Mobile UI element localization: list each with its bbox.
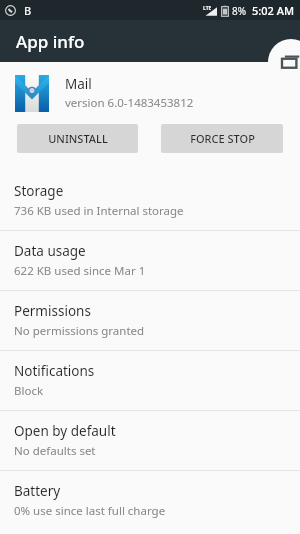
button[interactable]: Recent apps — [268, 39, 300, 85]
staticText: Notifications — [14, 362, 95, 380]
staticText: 8% — [232, 4, 247, 18]
staticText: B — [24, 3, 32, 18]
button[interactable]: FORCE STOP — [161, 124, 283, 153]
staticText: No permissions granted — [14, 323, 145, 339]
button[interactable]: Permissions — [0, 291, 300, 350]
staticText: Data usage — [14, 242, 86, 260]
button[interactable]: Notifications — [0, 351, 300, 410]
button[interactable]: Data usage — [0, 231, 300, 290]
staticText: Storage — [14, 182, 64, 200]
staticText: 0% use since last full charge — [14, 503, 166, 519]
staticText: Block — [14, 383, 44, 399]
staticText: Permissions — [14, 302, 91, 320]
button[interactable]: UNINSTALL — [17, 124, 138, 153]
button[interactable]: Storage — [0, 171, 300, 230]
staticText: App info — [16, 30, 85, 53]
button[interactable]: Open by default — [0, 411, 300, 470]
staticText: Open by default — [14, 422, 116, 440]
staticText: LTE — [203, 5, 212, 12]
staticText: Battery — [14, 482, 61, 500]
staticText: version 6.0-1483453812 — [65, 95, 194, 111]
staticText: Mail — [65, 75, 92, 93]
staticText: No defaults set — [14, 443, 96, 459]
button[interactable]: Battery — [0, 471, 300, 530]
staticText: UNINSTALL — [48, 131, 108, 146]
staticText: FORCE STOP — [190, 131, 255, 146]
button[interactable]: Mail — [0, 62, 300, 124]
staticText: 5:02 AM — [252, 3, 295, 18]
staticText: 736 KB used in Internal storage — [14, 203, 184, 219]
staticText: 622 KB used since Mar 1 — [14, 263, 146, 279]
